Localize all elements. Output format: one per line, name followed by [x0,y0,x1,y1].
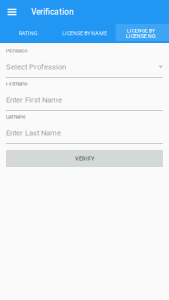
staticText: LICENSE BY [127,28,155,34]
staticText: VERIFY [75,155,94,162]
staticText: Enter Last Name [6,128,61,137]
staticText: First Name [6,81,27,87]
button[interactable]: Open navigation menu [0,0,24,24]
button[interactable]: RATING [0,24,56,43]
staticText: RATING [19,30,38,37]
staticText: Last Name [6,114,25,120]
staticText: Profession [6,48,28,54]
staticText: Enter First Name [6,95,62,104]
staticText: LICENSE NO. [126,33,156,39]
staticText: LICENSE BY NAME [62,30,107,37]
button[interactable]: First Name [6,78,163,111]
staticText: Verification [31,7,74,17]
button[interactable]: LICENSE BY [113,24,169,43]
button[interactable]: VERIFY [6,150,163,167]
button[interactable]: LICENSE BY NAME [56,24,113,43]
staticText: Select Profession [6,62,66,71]
button[interactable]: Profession [6,45,163,78]
button[interactable]: Last Name [6,111,163,144]
